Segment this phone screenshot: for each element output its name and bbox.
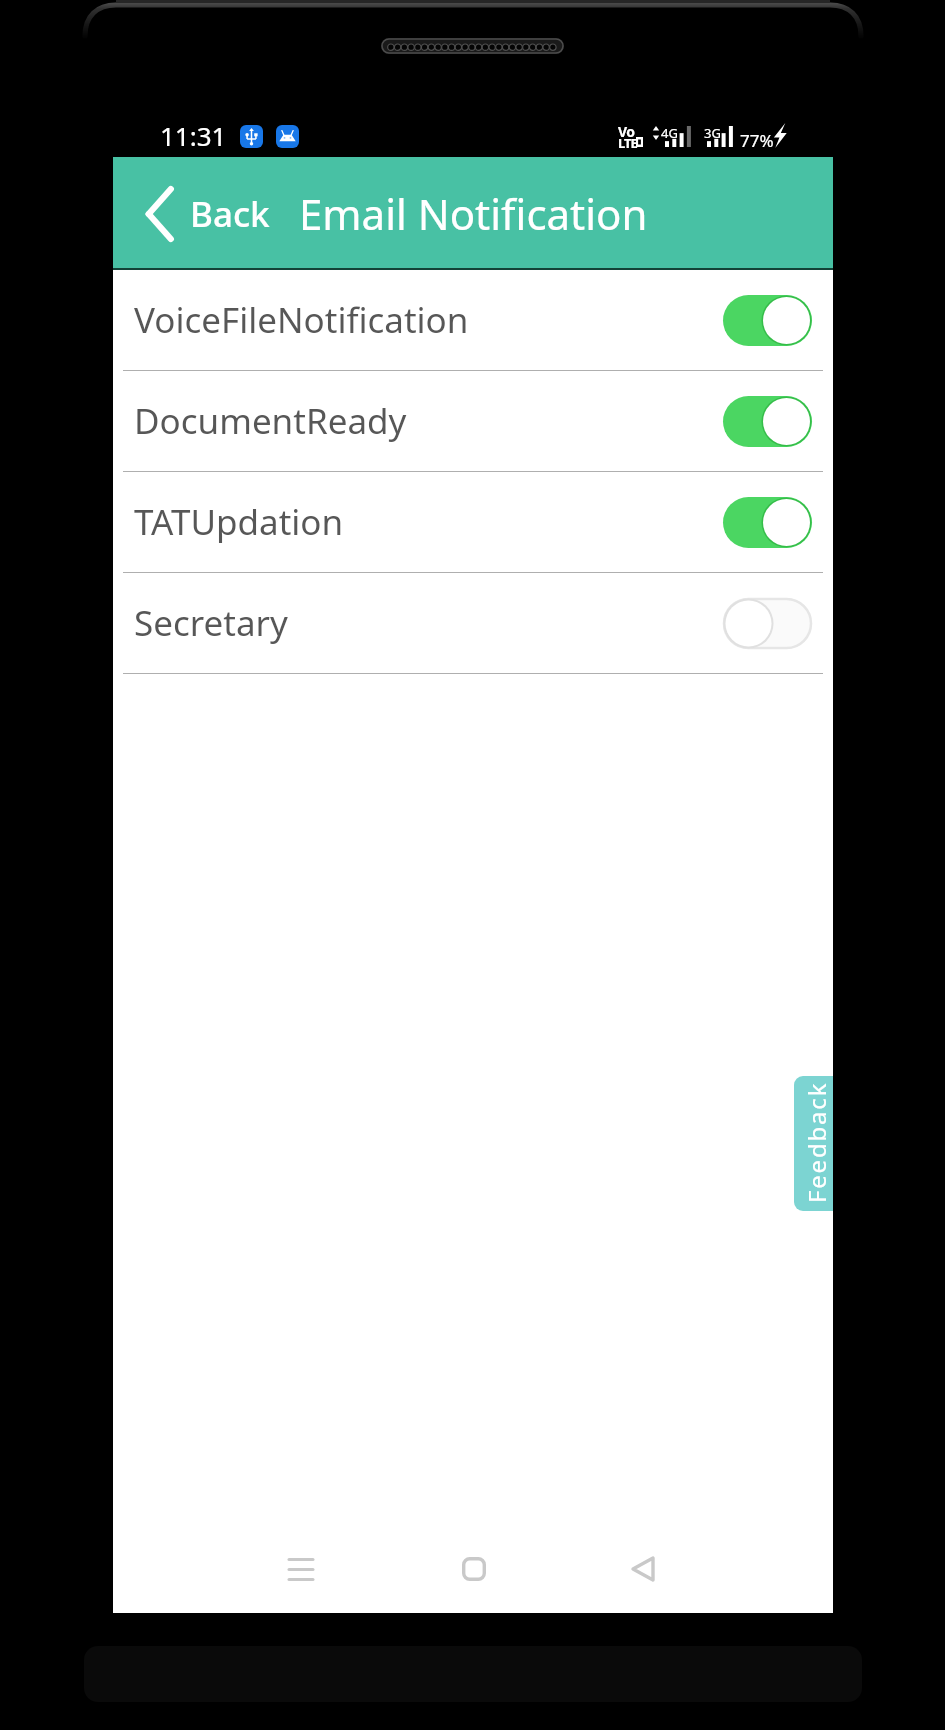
staticText: Secretary xyxy=(134,599,723,647)
button[interactable]: TATUpdation xyxy=(113,472,833,573)
button[interactable]: Secretary xyxy=(113,573,833,674)
button[interactable]: Feedback xyxy=(794,1076,833,1211)
button[interactable]: Recents xyxy=(265,1533,337,1605)
staticText: VoiceFileNotification xyxy=(134,296,723,344)
staticText: DocumentReady xyxy=(134,397,723,445)
staticText: 3G xyxy=(704,124,721,142)
button[interactable]: Back xyxy=(113,157,280,270)
button[interactable]: DocumentReady xyxy=(113,371,833,472)
button[interactable]: VoiceFileNotification xyxy=(113,270,833,371)
button[interactable]: Home xyxy=(438,1533,510,1605)
staticText: Back xyxy=(190,190,270,238)
staticText: Email Notification xyxy=(299,185,648,242)
staticText: 4G xyxy=(661,124,678,142)
staticText: LTE xyxy=(618,134,637,152)
staticText: 11:31 xyxy=(160,118,227,153)
staticText: 77% xyxy=(740,129,774,152)
staticText: Vo xyxy=(618,122,635,141)
staticText: TATUpdation xyxy=(134,498,723,546)
button[interactable]: Back xyxy=(607,1533,679,1605)
staticText: Feedback xyxy=(800,1081,833,1203)
